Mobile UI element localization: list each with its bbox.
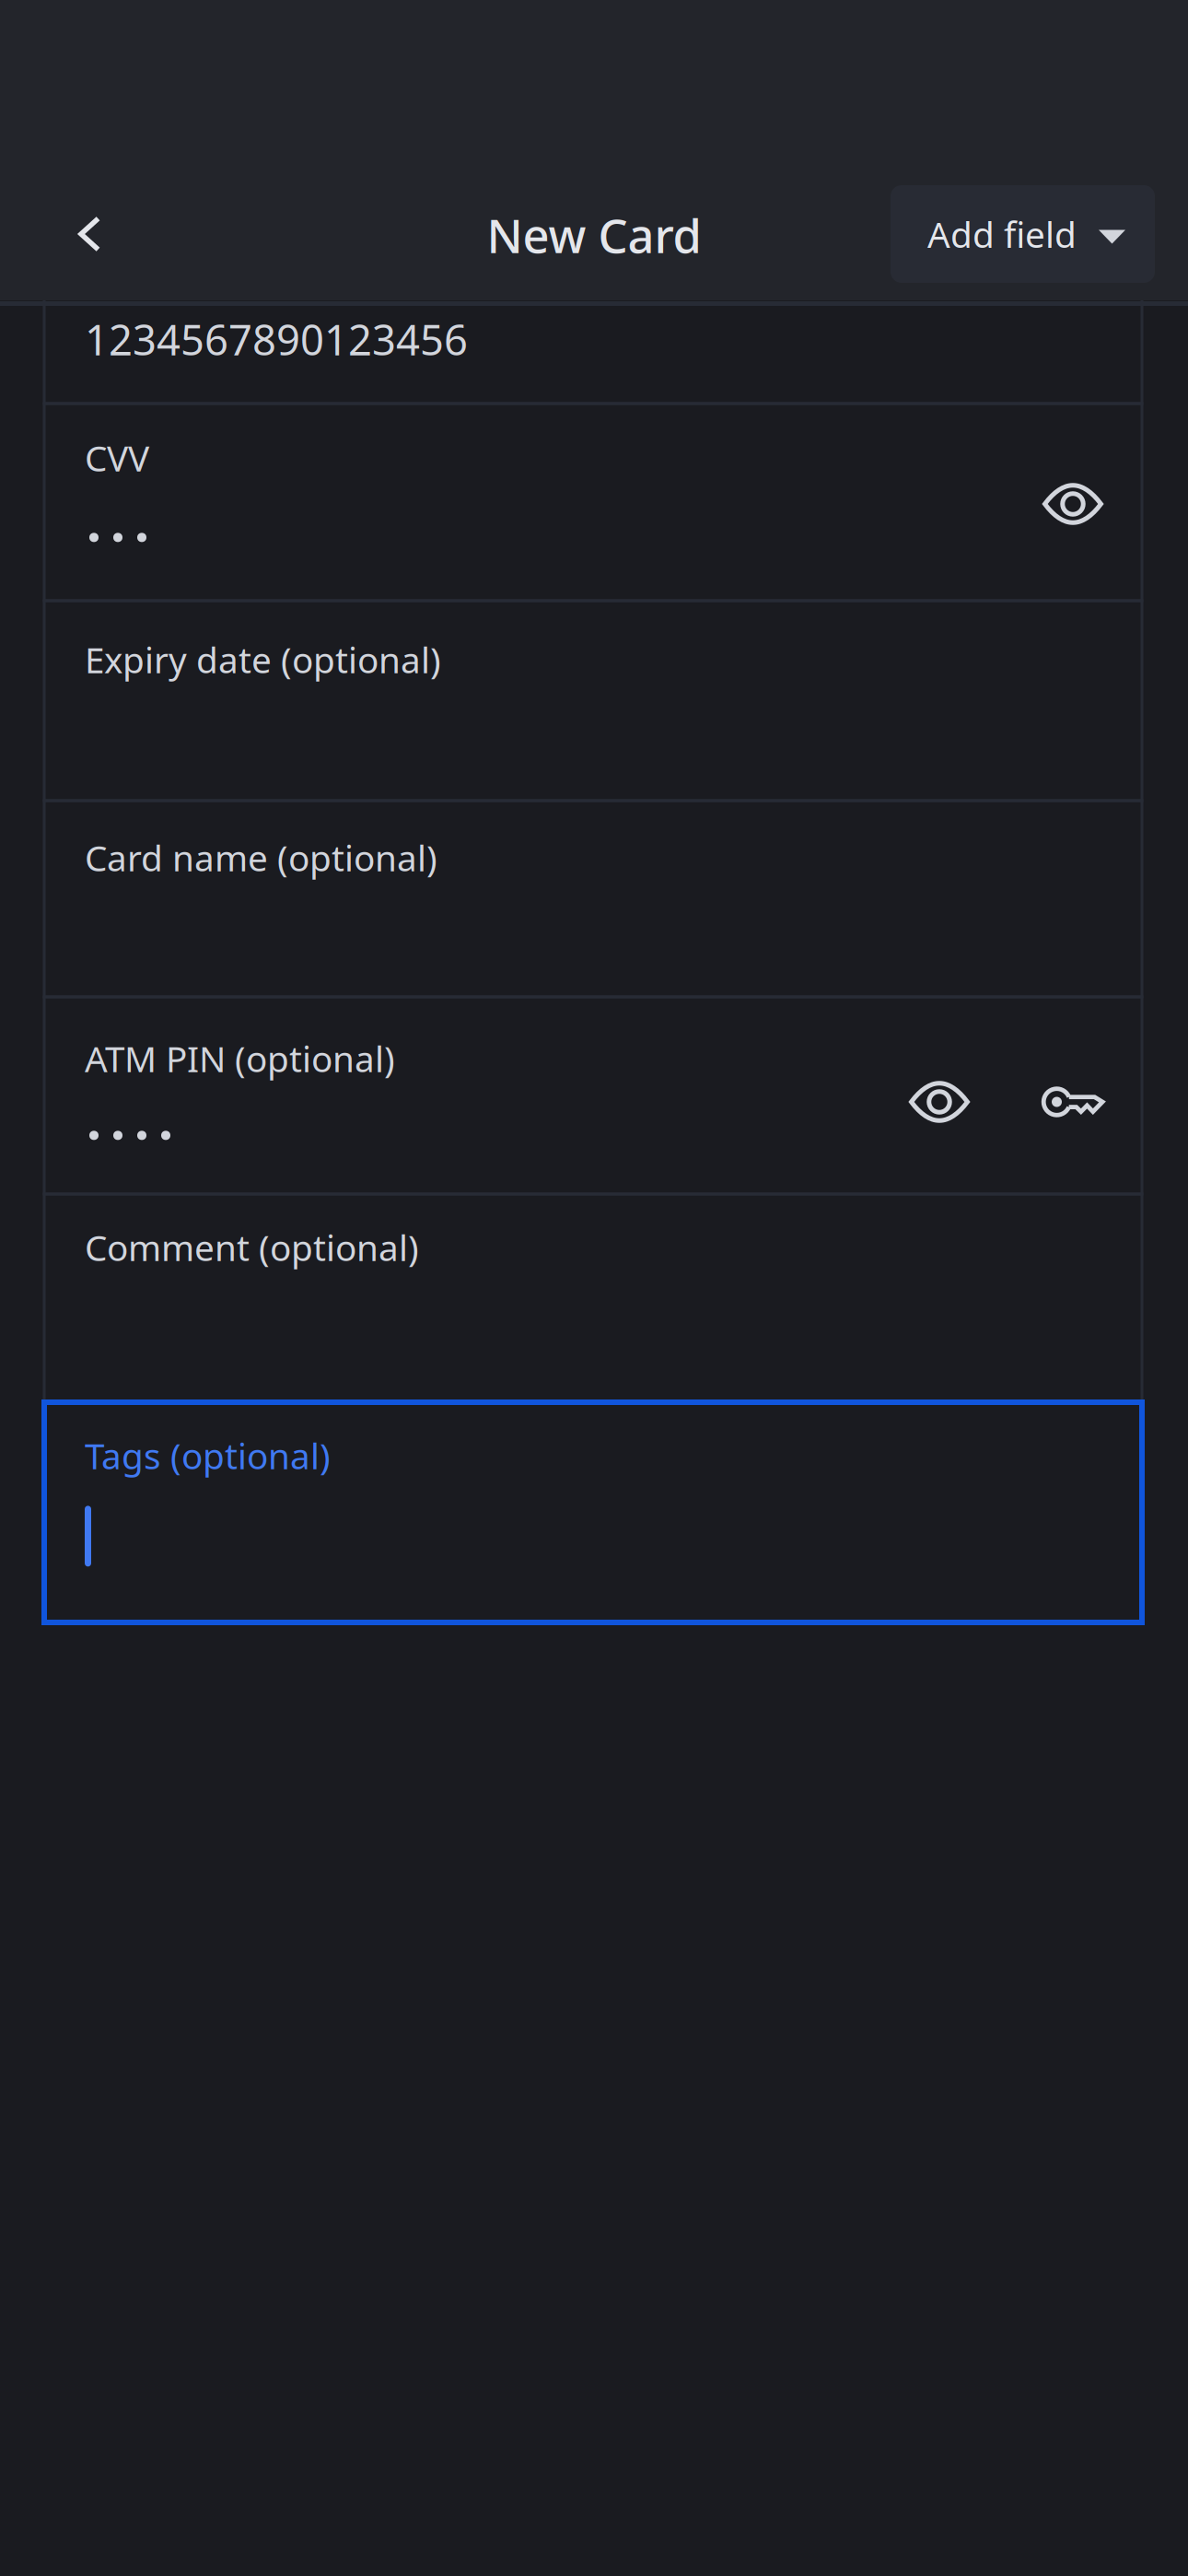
button[interactable]: Back: [34, 179, 145, 289]
staticText: Expiry date (optional): [85, 636, 441, 683]
staticText: 1234567890123456: [85, 311, 468, 367]
staticText: Tags (optional): [85, 1432, 331, 1479]
staticText: CVV: [85, 434, 149, 481]
button[interactable]: Show ATM PIN: [889, 1051, 990, 1153]
button[interactable]: Generate PIN: [1022, 1051, 1124, 1153]
staticText: ATM PIN (optional): [85, 1035, 395, 1082]
staticText: New Card: [487, 204, 701, 266]
staticText: Comment (optional): [85, 1224, 419, 1271]
staticText: Card name (optional): [85, 834, 437, 881]
button[interactable]: Add field: [891, 185, 1155, 283]
staticText: Add field: [927, 210, 1077, 258]
button[interactable]: Show CVV: [1018, 453, 1128, 555]
